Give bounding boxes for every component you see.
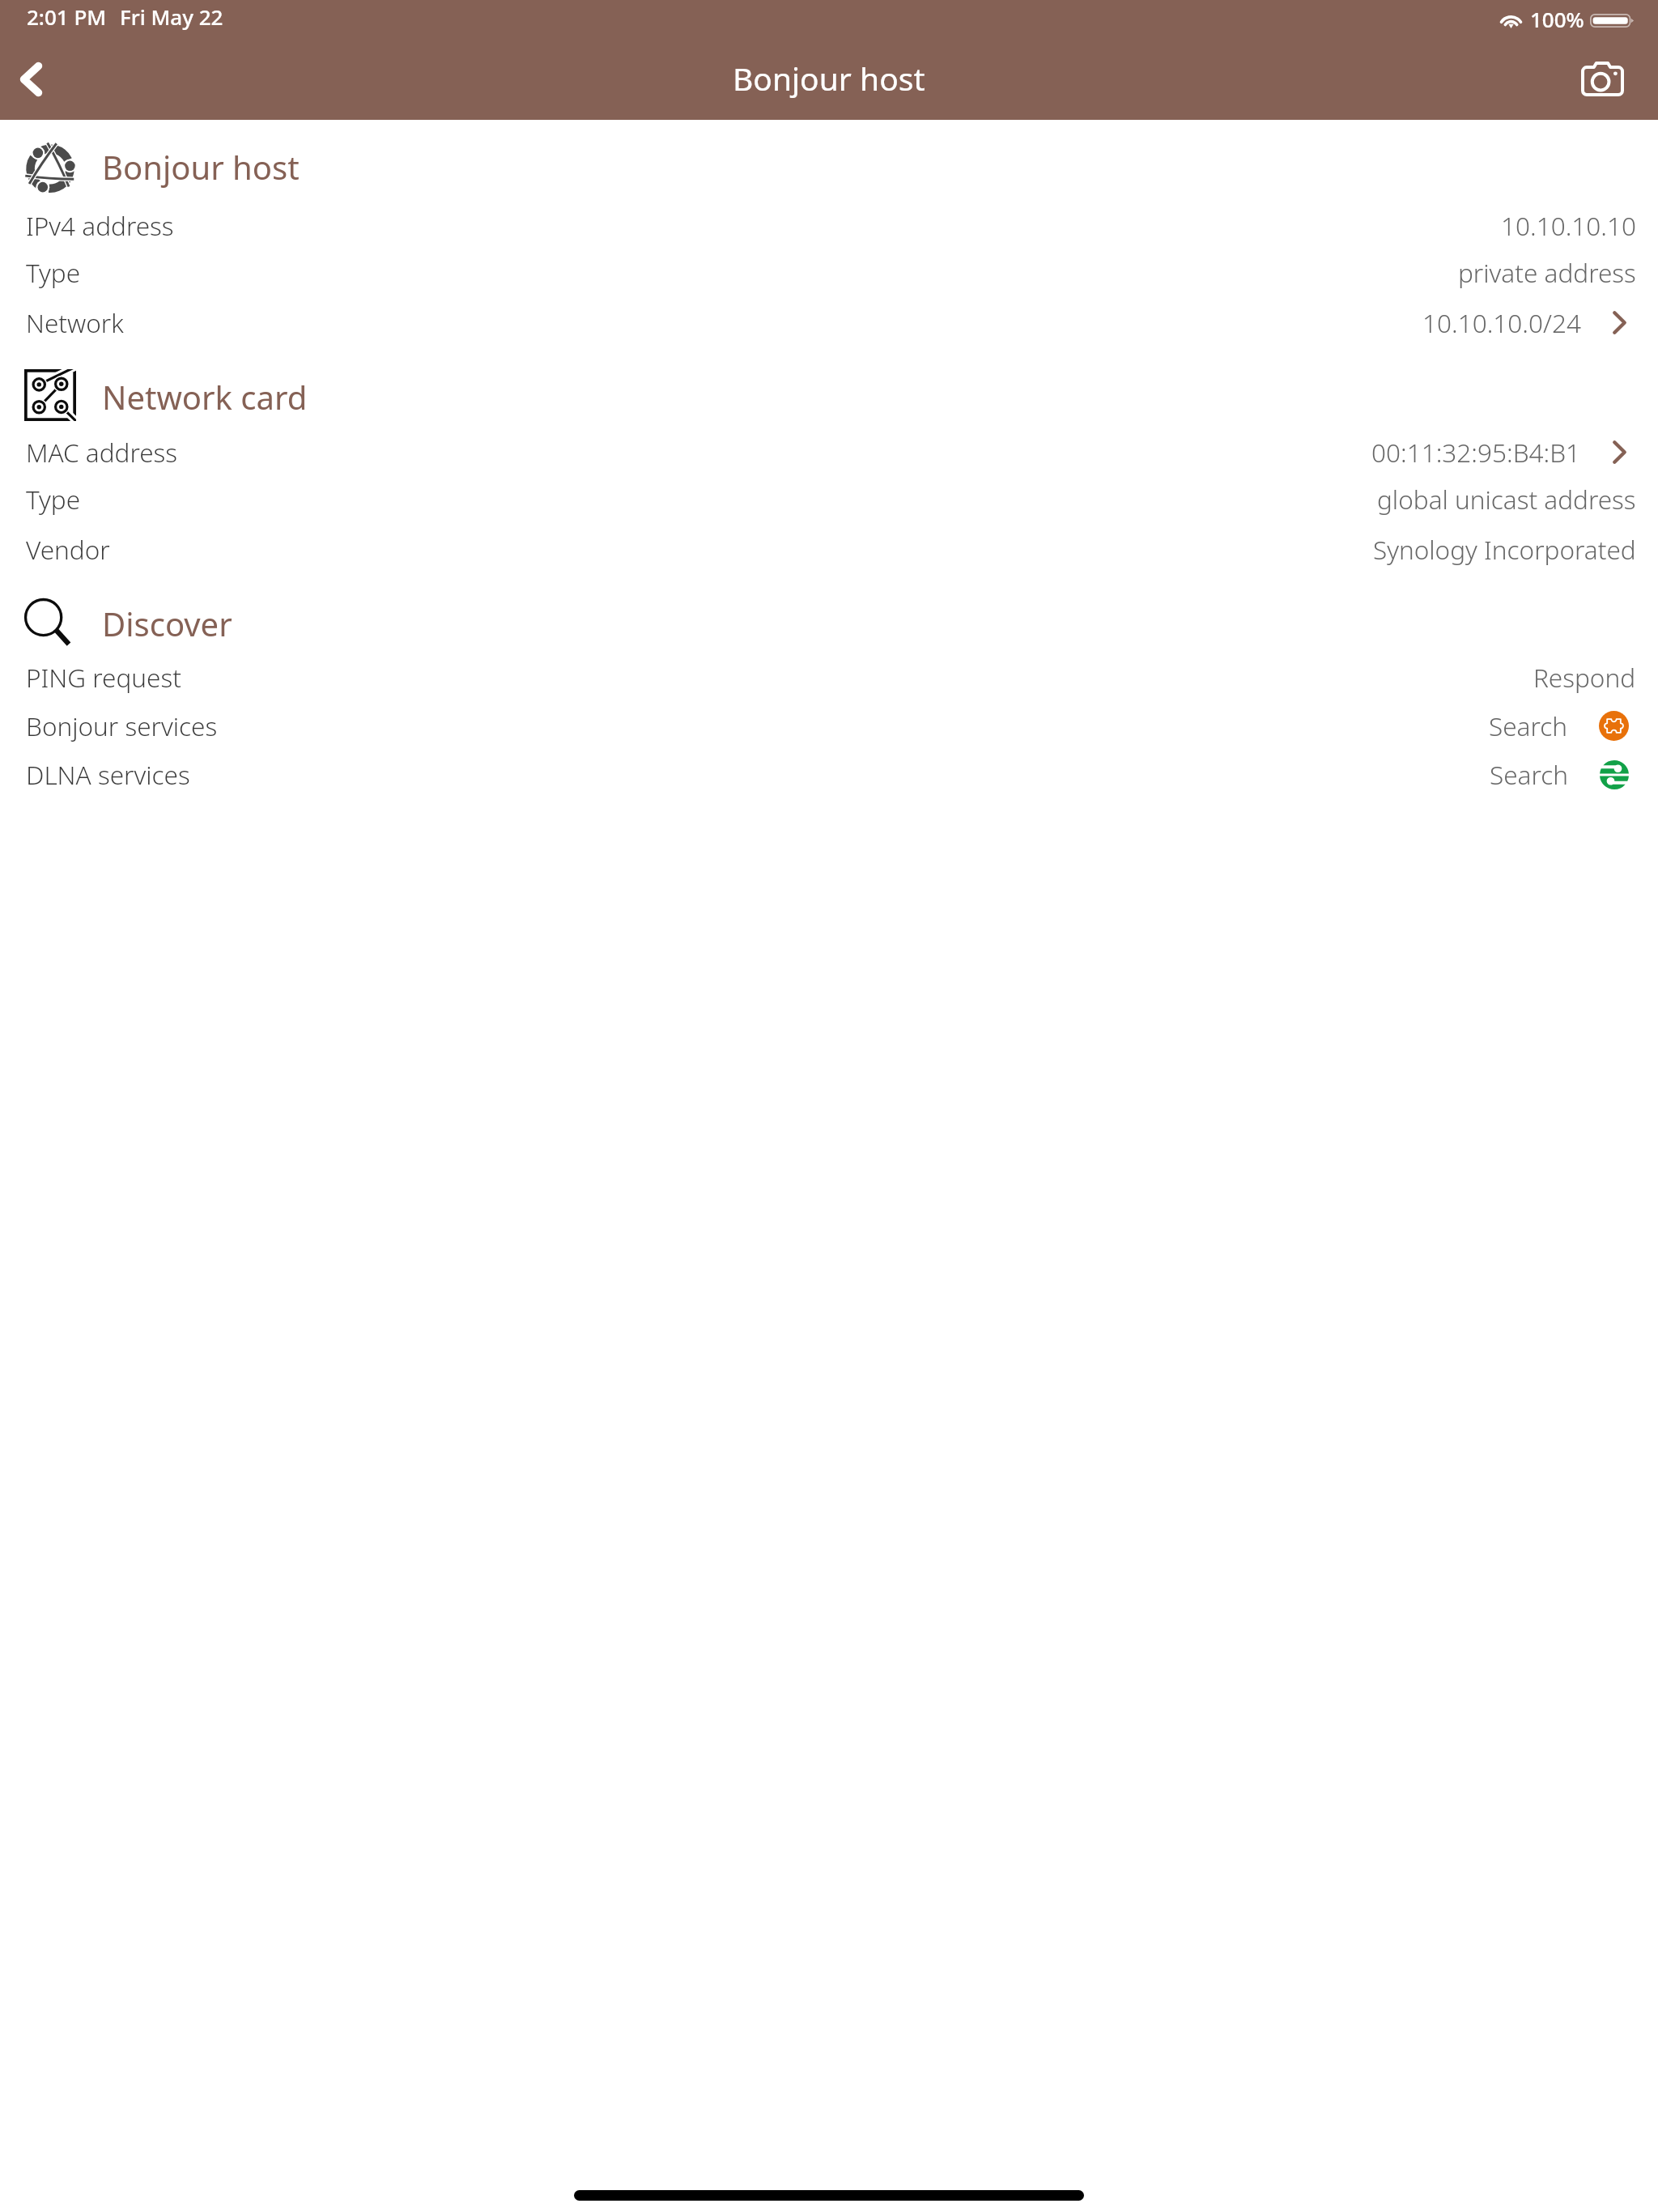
staticText: DLNA services xyxy=(26,757,190,792)
button[interactable]: Camera xyxy=(1573,49,1631,108)
staticText: 00:11:32:95:B4:B1 xyxy=(1371,435,1581,470)
button[interactable]: Type xyxy=(0,249,1658,296)
staticText: Type xyxy=(26,482,81,517)
button[interactable]: MAC address xyxy=(0,428,1658,476)
staticText: PING request xyxy=(26,660,181,695)
button[interactable]: Type xyxy=(0,475,1658,523)
staticText: Network card xyxy=(102,375,308,419)
staticText: 10.10.10.0/24 xyxy=(1422,305,1581,340)
button[interactable]: Network xyxy=(0,299,1658,347)
staticText: private address xyxy=(1458,255,1636,290)
staticText: Respond xyxy=(1533,660,1636,695)
staticText: Vendor xyxy=(26,532,110,567)
button[interactable]: IPv4 address xyxy=(0,202,1658,249)
staticText: Search xyxy=(1490,757,1568,792)
button[interactable]: Vendor xyxy=(0,525,1658,573)
button[interactable]: Back xyxy=(0,42,62,115)
staticText: Bonjour services xyxy=(26,708,218,743)
staticText: Discover xyxy=(102,602,232,645)
staticText: Bonjour host xyxy=(733,57,925,100)
staticText: Search xyxy=(1489,708,1567,743)
button[interactable]: Bonjour services xyxy=(0,702,1658,750)
staticText: Type xyxy=(26,255,81,290)
staticText: 10.10.10.10 xyxy=(1501,208,1636,243)
staticText: global unicast address xyxy=(1377,482,1636,517)
button[interactable]: PING request xyxy=(0,653,1658,701)
staticText: Network xyxy=(26,305,124,340)
staticText: IPv4 address xyxy=(26,208,174,243)
staticText: Fri May 22 xyxy=(120,2,223,31)
staticText: Synology Incorporated xyxy=(1373,532,1636,567)
staticText: Bonjour host xyxy=(102,145,300,189)
staticText: 100% xyxy=(1530,5,1584,33)
staticText: 2:01 PM xyxy=(27,2,107,31)
staticText: MAC address xyxy=(26,435,178,470)
button[interactable]: DLNA services xyxy=(0,751,1658,798)
